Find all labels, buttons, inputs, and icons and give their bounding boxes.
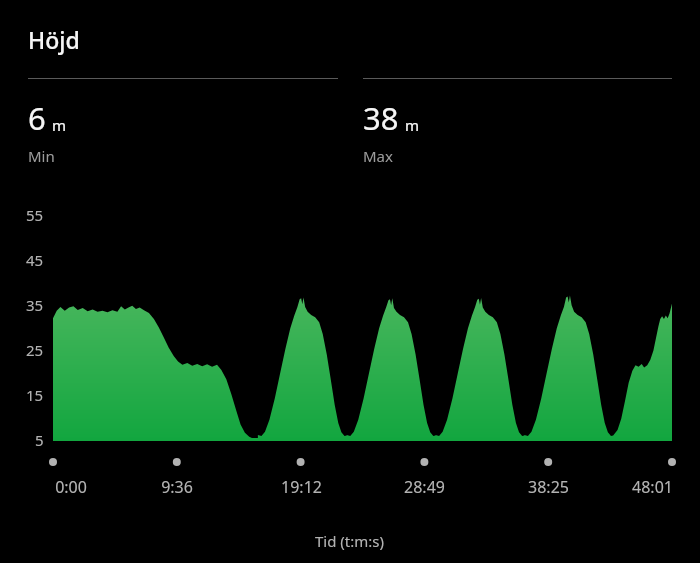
staticText: 45 xyxy=(26,250,44,270)
staticText: 15 xyxy=(26,385,44,405)
staticText: m xyxy=(52,115,67,135)
button[interactable]: 6 xyxy=(28,78,338,166)
staticText: 48:01 xyxy=(632,476,673,498)
staticText: 25 xyxy=(26,340,44,360)
staticText: 5 xyxy=(35,430,44,450)
staticText: 28:49 xyxy=(404,476,445,498)
staticText: 9:36 xyxy=(161,476,193,498)
staticText: 38 xyxy=(363,97,399,139)
staticText: 6 xyxy=(28,97,46,139)
staticText: Tid (t:m:s) xyxy=(315,531,385,551)
staticText: Höjd xyxy=(28,24,80,55)
button[interactable]: 38 xyxy=(363,78,672,166)
staticText: Min xyxy=(28,146,55,166)
staticText: 55 xyxy=(26,205,44,225)
staticText: 0:00 xyxy=(55,476,87,498)
staticText: 19:12 xyxy=(281,476,322,498)
staticText: m xyxy=(405,115,420,135)
staticText: Max xyxy=(363,146,393,166)
staticText: 35 xyxy=(26,295,44,315)
staticText: 38:25 xyxy=(528,476,569,498)
button[interactable]: Elevation over time chart xyxy=(0,0,700,563)
